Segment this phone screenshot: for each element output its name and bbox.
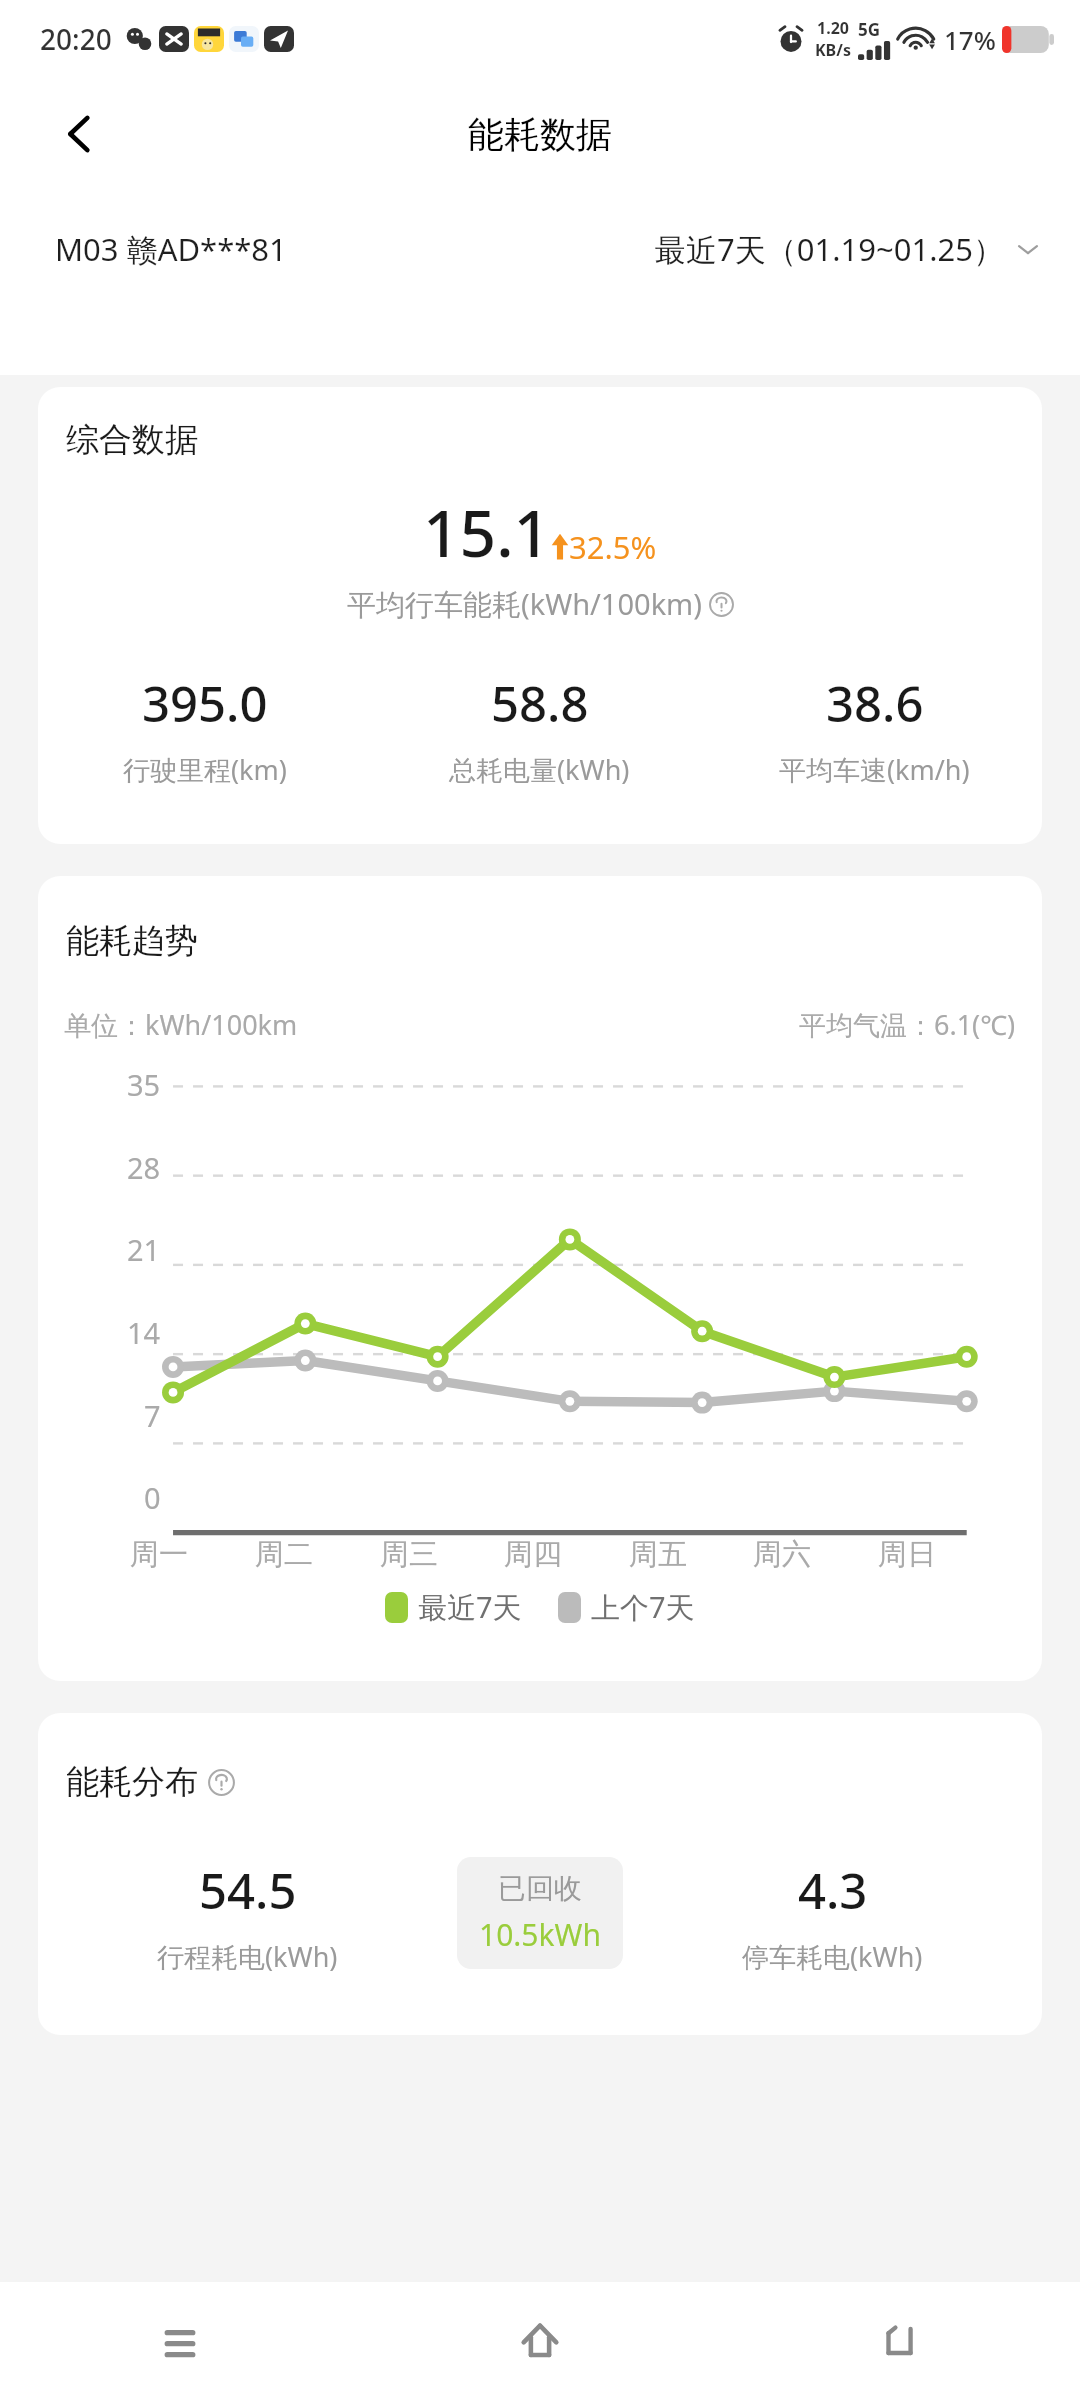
staticText: 周三	[380, 1536, 438, 1573]
staticText: 4.3	[798, 1857, 868, 1924]
staticText: 最近7天	[418, 1587, 522, 1627]
button[interactable]: Recent apps	[0, 2282, 360, 2400]
staticText: 综合数据	[66, 419, 198, 461]
staticText: 20:20	[40, 20, 112, 58]
staticText: 0	[144, 1478, 161, 1517]
staticText: 能耗趋势	[66, 920, 198, 962]
staticText: 1.20	[817, 17, 849, 39]
staticText: 32.5%	[569, 526, 657, 568]
staticText: 54.5	[199, 1857, 297, 1924]
staticText: 28	[127, 1148, 161, 1187]
staticText: 5G	[858, 18, 881, 41]
staticText: 已回收	[498, 1871, 582, 1906]
button[interactable]: Back	[42, 96, 118, 172]
staticText: 58.8	[491, 670, 589, 737]
staticText: 14	[127, 1313, 161, 1352]
staticText: 7	[144, 1396, 161, 1435]
staticText: 能耗分布	[66, 1761, 198, 1803]
button[interactable]: Home	[360, 2282, 720, 2400]
staticText: 停车耗电(kWh)	[742, 1938, 923, 1975]
staticText: KB/s	[815, 39, 851, 61]
staticText: 周二	[255, 1536, 313, 1573]
staticText: 15.1	[423, 489, 551, 576]
staticText: 38.6	[826, 670, 924, 737]
staticText: 单位：kWh/100km	[64, 1006, 298, 1043]
staticText: 行程耗电(kWh)	[157, 1938, 338, 1975]
staticText: 平均行车能耗(kWh/100km)	[347, 584, 702, 624]
staticText: 平均车速(km/h)	[779, 751, 970, 788]
button[interactable]: M03 赣AD***81	[55, 228, 287, 270]
staticText: 395.0	[142, 670, 268, 737]
button[interactable]: 最近7天（01.19~01.25）	[655, 228, 1044, 270]
staticText: 17%	[944, 22, 996, 57]
button[interactable]: Back	[720, 2282, 1080, 2400]
staticText: 行驶里程(km)	[123, 751, 287, 788]
staticText: 10.5kWh	[479, 1914, 601, 1955]
staticText: 总耗电量(kWh)	[449, 751, 630, 788]
staticText: 能耗数据	[468, 112, 612, 157]
staticText: 21	[127, 1230, 161, 1269]
staticText: 35	[127, 1065, 161, 1104]
staticText: 周六	[753, 1536, 811, 1573]
staticText: 平均气温：6.1(℃)	[799, 1006, 1016, 1043]
staticText: 周日	[878, 1536, 936, 1573]
staticText: 最近7天（01.19~01.25）	[655, 228, 1004, 270]
staticText: 周五	[629, 1536, 687, 1573]
staticText: 周一	[130, 1536, 188, 1573]
staticText: 周四	[504, 1536, 562, 1573]
staticText: 上个7天	[591, 1587, 695, 1627]
